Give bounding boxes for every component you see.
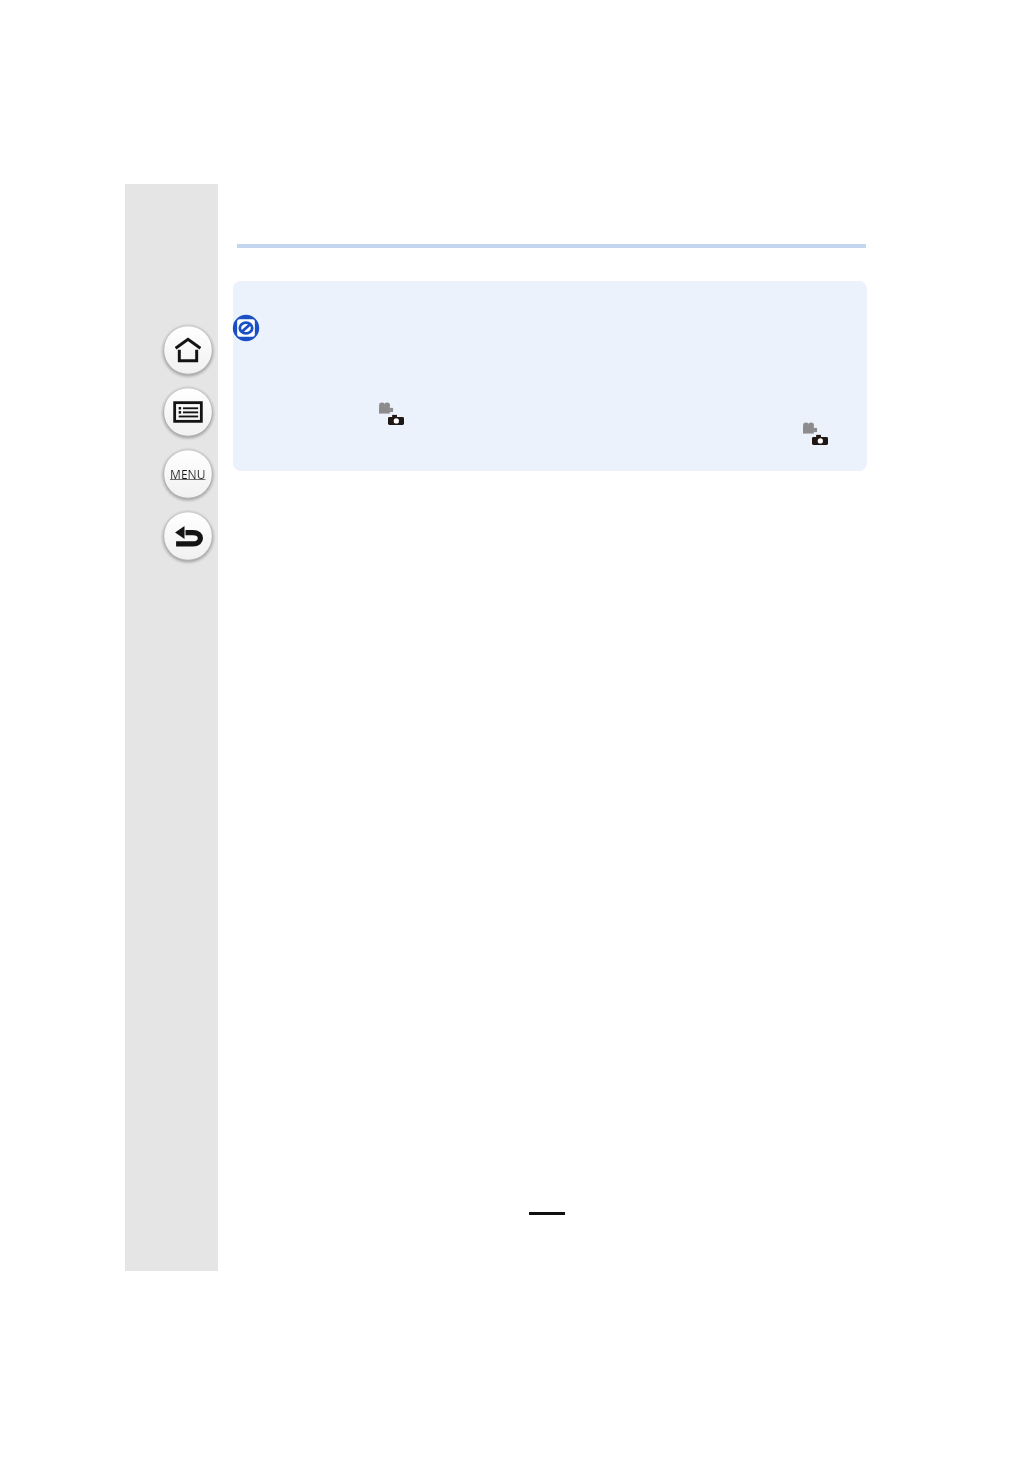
staticText: MENU: [170, 466, 206, 482]
button[interactable]: Home: [157, 319, 219, 381]
button[interactable]: Menu: [157, 443, 219, 505]
other: Motion and still picture: [803, 423, 828, 445]
button[interactable]: Return: [157, 505, 219, 567]
other: Motion and still picture: [379, 403, 404, 425]
other: Not available: [231, 313, 261, 343]
button[interactable]: Contents: [157, 381, 219, 443]
